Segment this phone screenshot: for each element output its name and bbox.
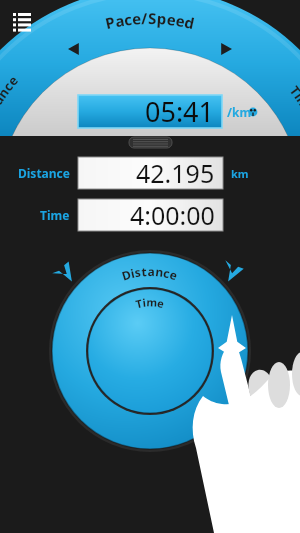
button[interactable]: Pace value 05:41 per km (78, 95, 222, 128)
button[interactable] (78, 157, 223, 189)
button[interactable]: Distance and time dial (52, 253, 248, 449)
button[interactable] (78, 199, 223, 231)
button[interactable]: Menu (6, 8, 30, 32)
